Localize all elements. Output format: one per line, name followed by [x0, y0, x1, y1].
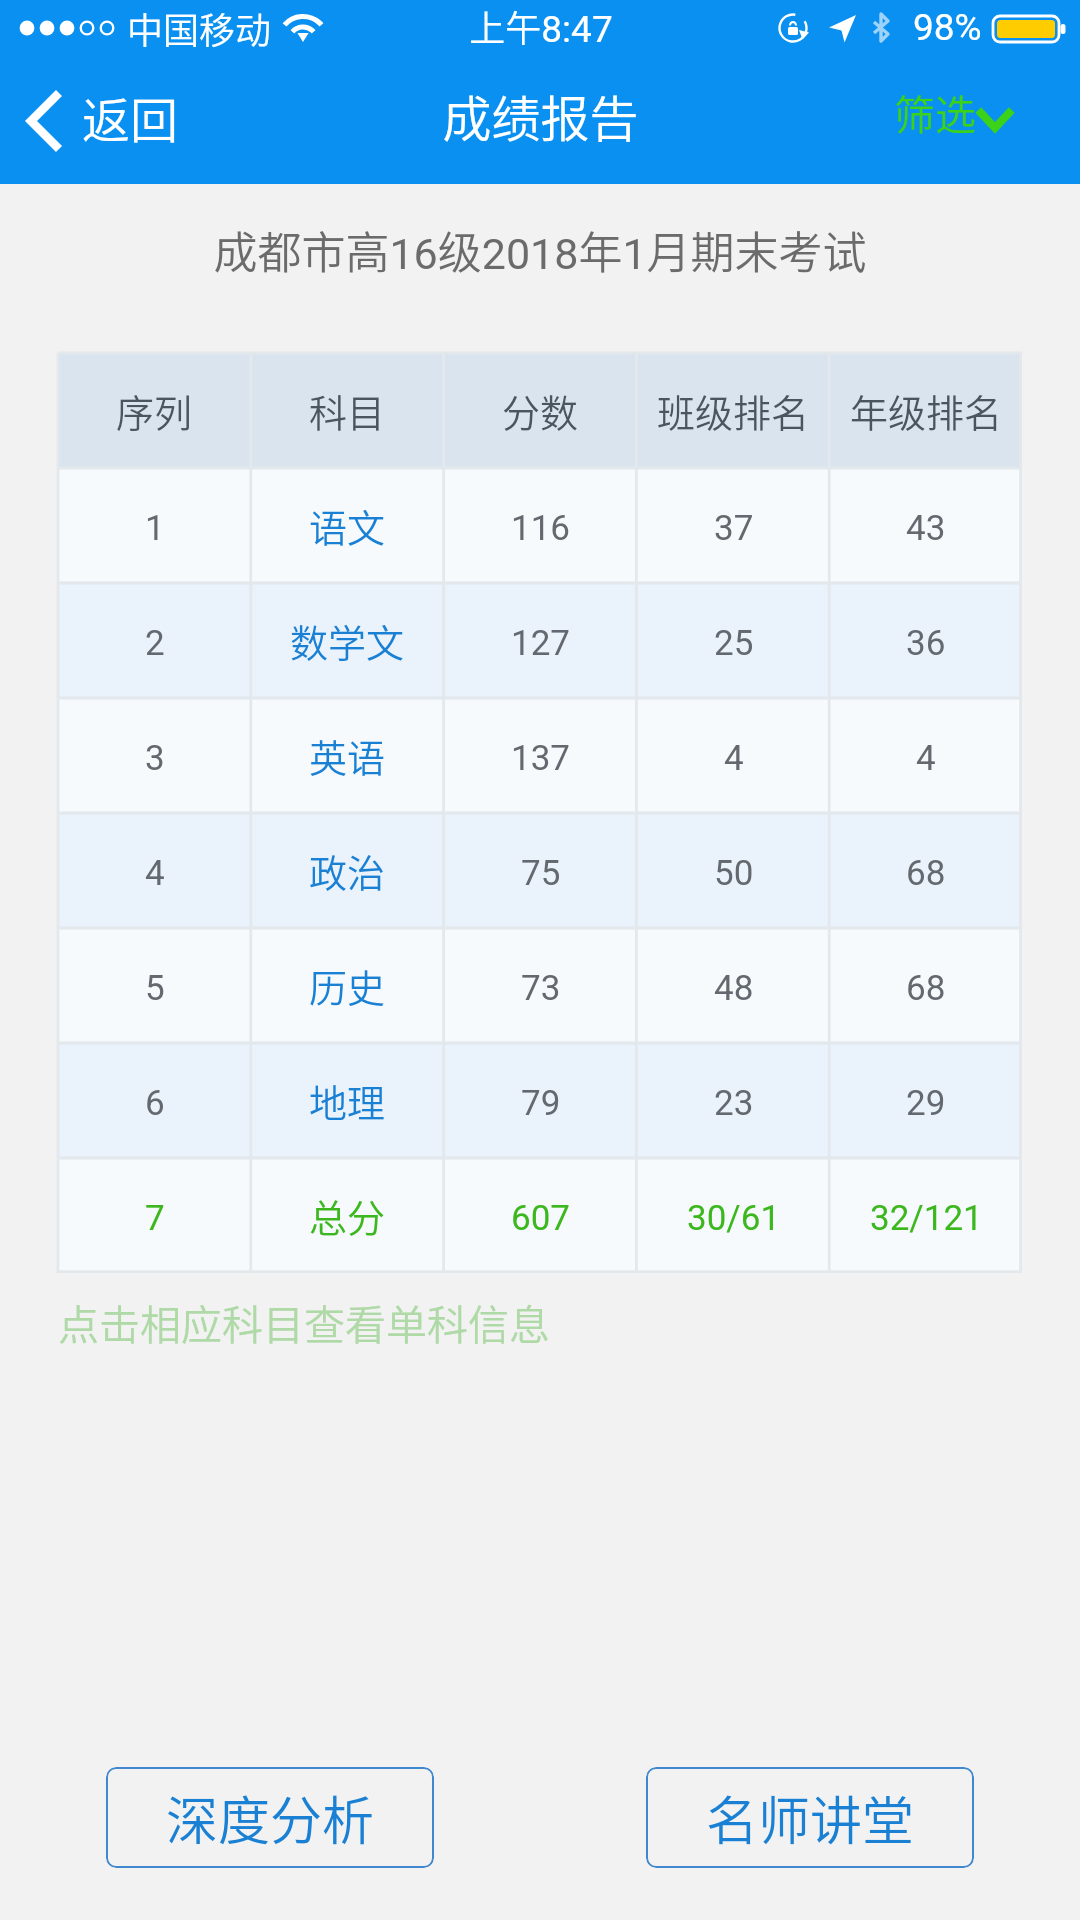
button[interactable]: 筛选	[880, 56, 1030, 184]
staticText: 68	[906, 853, 946, 894]
staticText: 127	[511, 623, 571, 664]
staticText: 79	[521, 1083, 561, 1124]
staticText: 75	[521, 853, 561, 894]
staticText: 4	[724, 738, 744, 779]
button[interactable]: 30/61	[637, 1158, 830, 1273]
staticText: 36	[906, 623, 946, 664]
staticText: 年级排名	[850, 383, 1003, 438]
staticText: 32/121	[870, 1198, 983, 1239]
staticText: 137	[511, 738, 571, 779]
button[interactable]: 历史	[251, 928, 444, 1043]
button[interactable]: 73	[444, 928, 637, 1043]
staticText: 30/61	[687, 1198, 781, 1239]
button[interactable]: 英语	[251, 698, 444, 813]
staticText: 分数	[502, 383, 579, 438]
button[interactable]: 返回	[0, 56, 190, 184]
staticText: 3	[145, 738, 165, 779]
staticText: 73	[521, 968, 561, 1009]
button[interactable]: 5	[58, 928, 251, 1043]
button[interactable]: 6	[58, 1043, 251, 1158]
button[interactable]: 68	[830, 813, 1022, 928]
staticText: 返回	[82, 82, 179, 152]
button[interactable]: 36	[830, 583, 1022, 698]
staticText: 4	[145, 853, 165, 894]
staticText: 2	[145, 623, 165, 664]
staticText: 历史	[309, 958, 386, 1013]
button[interactable]: 深度分析	[106, 1767, 434, 1868]
staticText: 29	[906, 1083, 946, 1124]
button[interactable]: 7	[58, 1158, 251, 1273]
staticText: 中国移动	[127, 2, 272, 54]
button[interactable]: 1	[58, 468, 251, 583]
staticText: 成都市高16级2018年1月期末考试	[213, 218, 867, 282]
staticText: 116	[511, 508, 571, 549]
button[interactable]: 43	[830, 468, 1022, 583]
staticText: 数学文	[290, 613, 405, 668]
staticText: 英语	[309, 728, 386, 783]
button[interactable]: 32/121	[830, 1158, 1022, 1273]
staticText: 语文	[309, 498, 386, 553]
staticText: 98%	[913, 6, 982, 49]
button[interactable]: 2	[58, 583, 251, 698]
button[interactable]: 语文	[251, 468, 444, 583]
staticText: 序列	[116, 383, 193, 438]
button[interactable]: 79	[444, 1043, 637, 1158]
staticText: 50	[714, 853, 754, 894]
staticText: 68	[906, 968, 946, 1009]
staticText: 6	[145, 1083, 165, 1124]
button[interactable]: 29	[830, 1043, 1022, 1158]
staticText: 7	[145, 1198, 165, 1239]
staticText: 点击相应科目查看单科信息	[58, 1292, 550, 1351]
staticText: 筛选	[894, 82, 976, 141]
button[interactable]: 3	[58, 698, 251, 813]
staticText: 1	[145, 508, 165, 549]
button[interactable]: 总分	[251, 1158, 444, 1273]
staticText: 政治	[309, 843, 386, 898]
button[interactable]: 127	[444, 583, 637, 698]
staticText: 上午8:47	[469, 0, 613, 52]
staticText: 总分	[309, 1188, 386, 1243]
staticText: 深度分析	[166, 1780, 375, 1855]
button[interactable]: 137	[444, 698, 637, 813]
button[interactable]: 名师讲堂	[646, 1767, 974, 1868]
button[interactable]: 数学文	[251, 583, 444, 698]
button[interactable]: 116	[444, 468, 637, 583]
staticText: 43	[906, 508, 946, 549]
button[interactable]: 23	[637, 1043, 830, 1158]
staticText: 4	[916, 738, 936, 779]
staticText: 37	[714, 508, 754, 549]
staticText: 地理	[309, 1073, 386, 1128]
button[interactable]: 4	[637, 698, 830, 813]
staticText: 科目	[309, 383, 386, 438]
staticText: 25	[714, 623, 754, 664]
button[interactable]: 68	[830, 928, 1022, 1043]
button[interactable]: 地理	[251, 1043, 444, 1158]
button[interactable]: 50	[637, 813, 830, 928]
staticText: 名师讲堂	[706, 1780, 915, 1855]
button[interactable]: 75	[444, 813, 637, 928]
button[interactable]: 25	[637, 583, 830, 698]
staticText: 成绩报告	[442, 80, 639, 151]
button[interactable]: 4	[830, 698, 1022, 813]
staticText: 班级排名	[657, 383, 810, 438]
button[interactable]: 607	[444, 1158, 637, 1273]
button[interactable]: 4	[58, 813, 251, 928]
button[interactable]: 37	[637, 468, 830, 583]
staticText: 48	[714, 968, 754, 1009]
staticText: 23	[714, 1083, 754, 1124]
button[interactable]: 政治	[251, 813, 444, 928]
staticText: 5	[145, 968, 165, 1009]
button[interactable]: 48	[637, 928, 830, 1043]
staticText: 607	[511, 1198, 571, 1239]
